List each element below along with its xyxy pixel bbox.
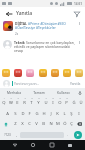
button[interactable]: B	[40, 118, 47, 129]
staticText: I	[78, 111, 80, 117]
button[interactable]: More options	[77, 40, 82, 45]
staticText: X	[21, 121, 24, 127]
staticText: .	[67, 132, 68, 137]
staticText: 1	[3, 97, 5, 100]
button[interactable]: G	[33, 107, 40, 118]
button[interactable]: Emoji	[39, 69, 47, 77]
staticText: M	[56, 121, 60, 127]
button[interactable]: 4	[21, 96, 28, 107]
button[interactable]: Backspace	[75, 118, 84, 129]
staticText: I	[52, 100, 54, 106]
staticText: 2	[10, 97, 12, 100]
button[interactable]: Ö	[61, 118, 68, 129]
staticText: H	[42, 111, 46, 117]
button[interactable]: K	[54, 107, 61, 118]
staticText: 8	[52, 97, 54, 100]
button[interactable]: Back	[11, 141, 19, 149]
button[interactable]: I	[75, 107, 82, 118]
button[interactable]: Profile picture	[3, 40, 12, 49]
staticText: ?123	[4, 133, 11, 137]
staticText: etkinlik ve paylaşım sıkıntılarınızdaki	[14, 44, 70, 48]
staticText: cevap	[14, 48, 23, 52]
button[interactable]: L	[61, 107, 68, 118]
button[interactable]: 9	[56, 96, 63, 107]
staticText: Sorunlarınız en çok karşılaşılan,	[26, 40, 75, 44]
button[interactable]: Comma	[13, 129, 20, 140]
button[interactable]: 7	[42, 96, 49, 107]
button[interactable]: A	[3, 107, 11, 118]
button[interactable]: Tamam	[26, 90, 51, 94]
button[interactable]: 1	[1, 96, 7, 107]
button[interactable]: More	[77, 21, 82, 26]
button[interactable]: 3	[14, 96, 21, 107]
button[interactable]: 0	[63, 96, 70, 107]
staticText: Yanıtla	[16, 10, 33, 17]
button[interactable]: Send	[71, 129, 84, 140]
button[interactable]: 6	[35, 96, 42, 107]
button[interactable]: Filter	[71, 8, 82, 19]
staticText: Ş	[70, 111, 73, 117]
staticText: U	[44, 100, 48, 106]
button[interactable]: Your profile	[3, 80, 10, 87]
button[interactable]: N	[47, 118, 54, 129]
staticText: B	[42, 121, 45, 127]
button[interactable]: Ş	[68, 107, 75, 118]
button[interactable]: J	[47, 107, 54, 118]
staticText: 3	[17, 97, 19, 100]
button[interactable]: Voice input	[76, 89, 83, 96]
button[interactable]: ?123	[1, 129, 13, 140]
staticText: DİJİTAL	[15, 21, 27, 25]
staticText: Yanıtınızı yazın...	[14, 81, 40, 85]
staticText: Ü	[79, 100, 83, 106]
button[interactable]: Yanıtla	[69, 81, 82, 85]
staticText: 6	[38, 97, 40, 100]
staticText: P	[65, 100, 68, 106]
button[interactable]: Yanıtınızı yazın...	[14, 81, 69, 85]
button[interactable]: C	[26, 118, 33, 129]
staticText: Y	[37, 100, 40, 106]
button[interactable]: Emoji	[75, 69, 83, 77]
button[interactable]: Merhaba	[2, 90, 26, 94]
button[interactable]: F	[26, 107, 33, 118]
button[interactable]: Ü	[77, 96, 84, 107]
button[interactable]: D	[19, 107, 26, 118]
staticText: J	[50, 111, 52, 117]
button[interactable]: 5	[28, 96, 35, 107]
staticText: Kullanıcı	[57, 90, 70, 94]
button[interactable]: 8	[49, 96, 56, 107]
staticText: L	[63, 111, 66, 117]
button[interactable]: X	[19, 118, 26, 129]
button[interactable]: Emoji	[63, 69, 71, 77]
staticText: 2s	[15, 32, 19, 36]
button[interactable]: M	[54, 118, 61, 129]
button[interactable]: Ç	[68, 118, 75, 129]
button[interactable]: S	[11, 107, 19, 118]
button[interactable]: H	[40, 107, 47, 118]
staticText: 5	[31, 97, 33, 100]
staticText: Merhaba	[7, 90, 21, 94]
staticText: A	[6, 111, 9, 117]
button[interactable]: Home	[29, 141, 37, 149]
button[interactable]: Profile picture	[3, 21, 13, 31]
staticText: 9	[59, 97, 61, 100]
button[interactable]: V	[33, 118, 40, 129]
button[interactable]: Hide keyboard	[66, 141, 74, 149]
button[interactable]: Kullanıcı	[51, 90, 76, 94]
button[interactable]: Emoji	[51, 69, 59, 77]
button[interactable]: 2	[7, 96, 14, 107]
button[interactable]: Shift	[1, 118, 11, 129]
button[interactable]: Emoji	[2, 69, 10, 77]
staticText: 14:51	[74, 2, 83, 6]
button[interactable]: Emoji	[14, 69, 22, 77]
staticText: V	[35, 121, 38, 127]
button[interactable]: Emoji	[26, 69, 34, 77]
staticText: T	[30, 100, 33, 106]
button[interactable]: Z	[11, 118, 19, 129]
button[interactable]: Back	[3, 8, 14, 19]
staticText: Ç	[70, 121, 73, 127]
button[interactable]: Ğ	[70, 96, 77, 107]
staticText: D	[21, 111, 25, 117]
button[interactable]: Recents	[48, 141, 56, 149]
